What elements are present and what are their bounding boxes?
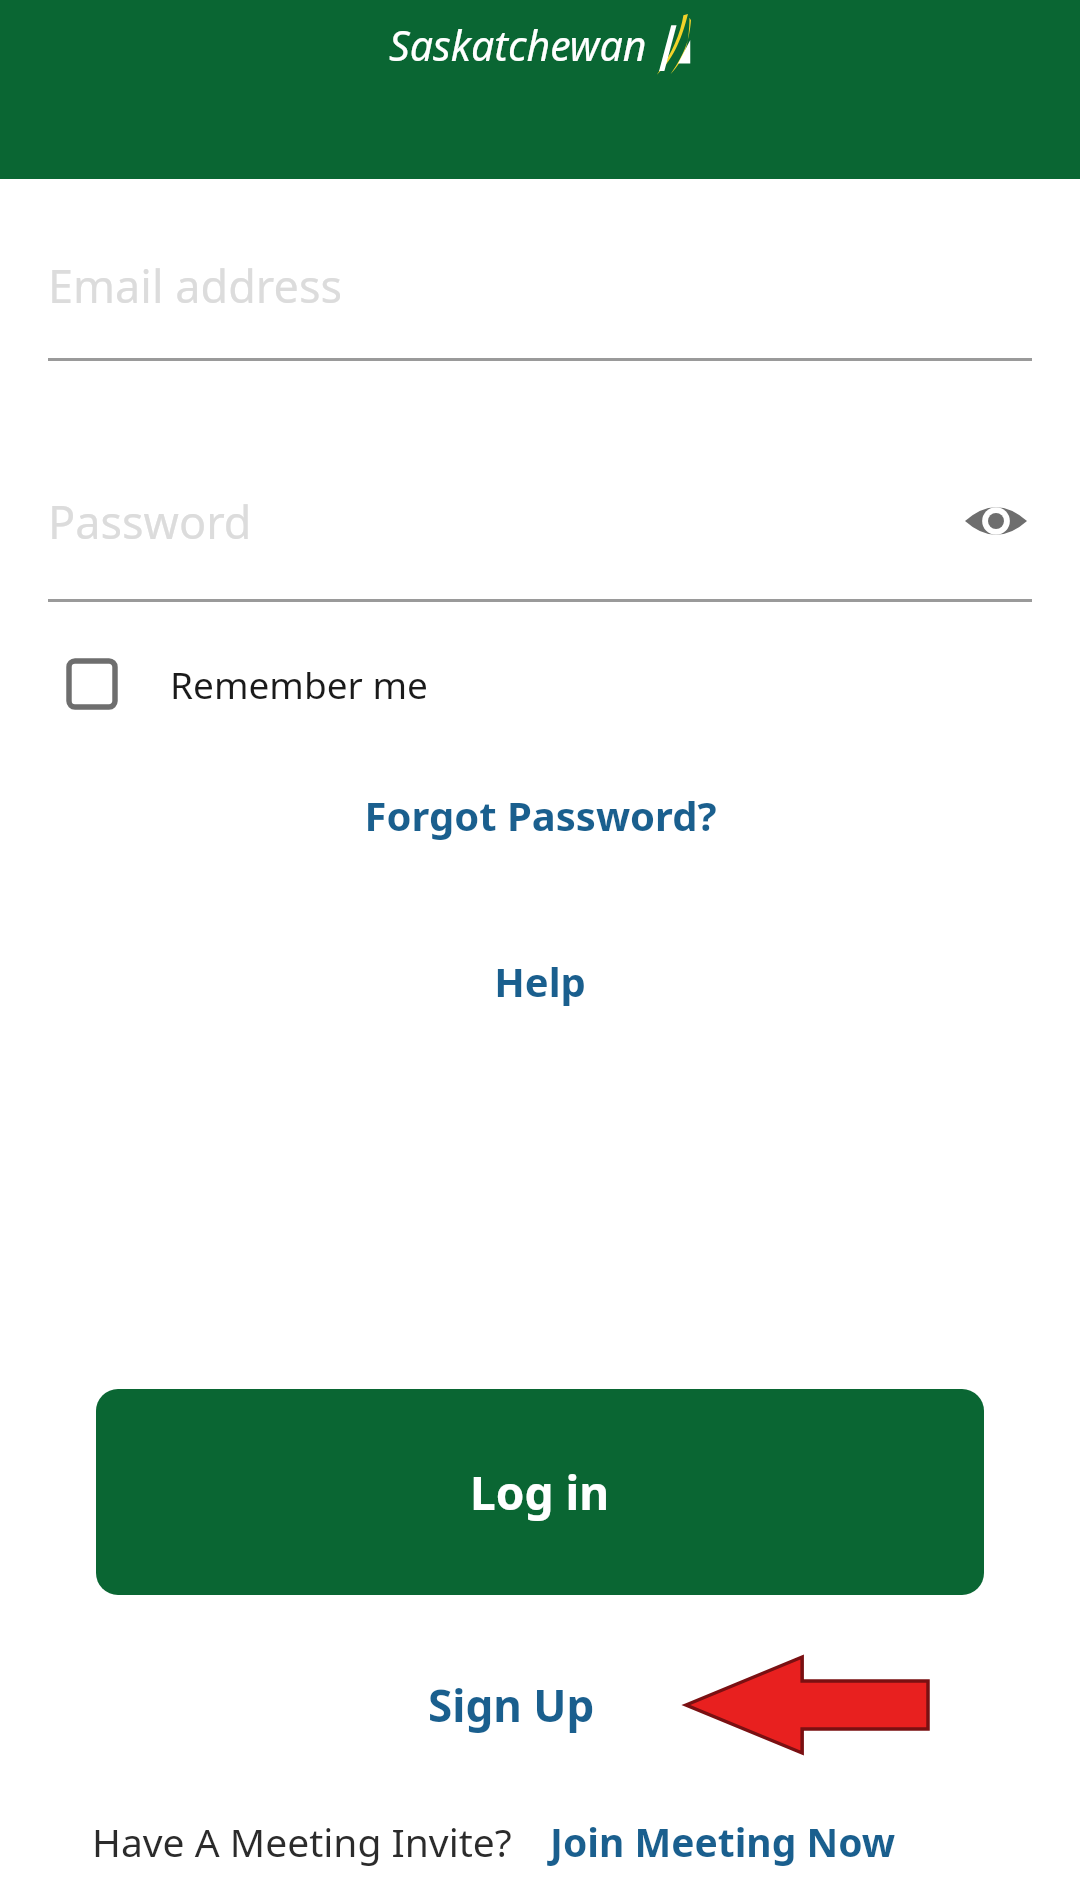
button[interactable]: Show password [960, 485, 1032, 557]
button[interactable]: Sign Up [420, 1667, 603, 1743]
staticText: Saskatchewan [389, 17, 647, 73]
staticText: Remember me [170, 659, 428, 709]
staticText: Help [494, 954, 586, 1008]
button[interactable]: Remember me [60, 648, 434, 720]
staticText: Join Meeting Now [550, 1815, 896, 1868]
staticText: Email address [48, 255, 1032, 316]
staticText: Forgot Password? [364, 788, 717, 842]
staticText: Have A Meeting Invite? [92, 1815, 512, 1868]
button[interactable]: Forgot Password? [346, 782, 735, 848]
button[interactable]: Help [476, 948, 604, 1014]
staticText: Sign Up [428, 1675, 595, 1735]
staticText: Log in [470, 1461, 610, 1524]
button[interactable]: Email address [48, 255, 1032, 361]
staticText: Password [48, 491, 960, 552]
button[interactable]: Join Meeting Now [550, 1815, 896, 1868]
button[interactable]: Log in [96, 1389, 984, 1595]
button[interactable]: Password [48, 485, 1032, 602]
